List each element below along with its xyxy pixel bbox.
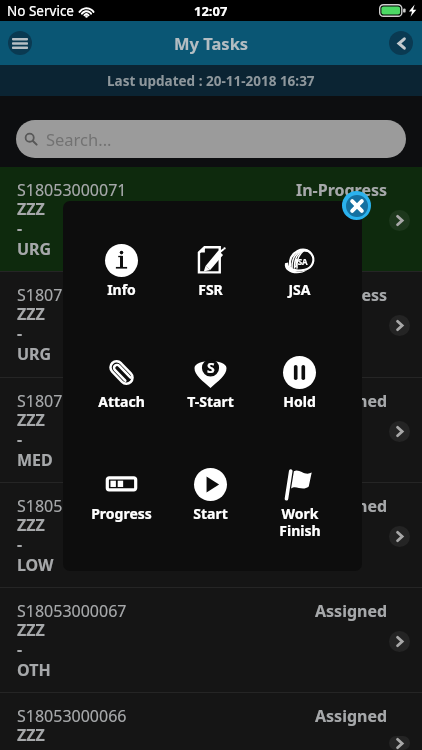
- staticText: -: [17, 322, 23, 344]
- staticText: Hold: [283, 392, 316, 411]
- staticText: S18070000069: [17, 390, 127, 412]
- staticText: Search...: [46, 128, 112, 150]
- staticText: Work Finish: [279, 504, 321, 540]
- staticText: No Service: [7, 2, 74, 20]
- staticText: URG: [17, 343, 52, 365]
- button[interactable]: JSA: [259, 244, 340, 299]
- button[interactable]: Attach: [81, 356, 162, 411]
- staticText: Assigned: [315, 495, 388, 517]
- staticText: 12:07: [194, 2, 228, 20]
- staticText: OTH: [17, 659, 51, 681]
- staticText: URG: [17, 238, 52, 260]
- staticText: S18050000068: [17, 495, 127, 517]
- staticText: ZZZ: [17, 619, 45, 641]
- button[interactable]: Work Finish: [259, 468, 340, 540]
- button[interactable]: Start: [170, 468, 251, 523]
- button[interactable]: Hold: [259, 356, 340, 411]
- staticText: ZZZ: [17, 724, 45, 746]
- button[interactable]: S18053000067: [0, 588, 422, 693]
- staticText: -: [17, 217, 23, 239]
- staticText: Attach: [98, 392, 145, 411]
- staticText: Assigned: [315, 600, 388, 622]
- button[interactable]: FSR: [170, 244, 251, 299]
- staticText: JSA: [288, 280, 311, 299]
- staticText: Info: [107, 280, 136, 299]
- staticText: Assigned: [315, 705, 388, 727]
- staticText: S18053000071: [17, 179, 127, 201]
- staticText: ZZZ: [17, 514, 45, 536]
- staticText: In-Progress: [296, 284, 388, 306]
- button[interactable]: Back: [389, 31, 413, 55]
- staticText: ZZZ: [17, 303, 45, 325]
- staticText: T-Start: [187, 392, 234, 411]
- staticText: ZZZ: [17, 409, 45, 431]
- button[interactable]: S18050000068: [0, 483, 422, 588]
- staticText: ZZZ: [17, 198, 45, 220]
- staticText: FSR: [198, 280, 223, 299]
- staticText: S18053000066: [17, 705, 127, 727]
- staticText: Progress: [91, 504, 152, 523]
- staticText: In-Progress: [296, 179, 388, 201]
- button[interactable]: S18070000069: [0, 378, 422, 483]
- staticText: JSA: [295, 256, 308, 267]
- staticText: LOW: [17, 554, 54, 576]
- staticText: Last updated : 20-11-2018 16:37: [107, 72, 315, 90]
- staticText: MED: [17, 449, 53, 471]
- button[interactable]: Progress: [81, 468, 162, 523]
- staticText: -: [17, 638, 23, 660]
- button[interactable]: Close: [342, 191, 371, 220]
- button[interactable]: S18053000066: [0, 693, 422, 750]
- staticText: -: [17, 428, 23, 450]
- staticText: S18070000070: [17, 284, 127, 306]
- staticText: S18053000067: [17, 600, 127, 622]
- staticText: -: [17, 533, 23, 555]
- button[interactable]: Search...: [16, 120, 406, 158]
- staticText: Start: [193, 504, 228, 523]
- button[interactable]: Info: [81, 244, 162, 299]
- button[interactable]: S18053000071: [0, 167, 422, 272]
- staticText: S: [207, 358, 215, 377]
- staticText: Assigned: [315, 390, 388, 412]
- button[interactable]: Menu: [8, 31, 32, 55]
- button[interactable]: S18070000070: [0, 272, 422, 378]
- staticText: My Tasks: [174, 32, 249, 54]
- button[interactable]: S: [170, 356, 251, 411]
